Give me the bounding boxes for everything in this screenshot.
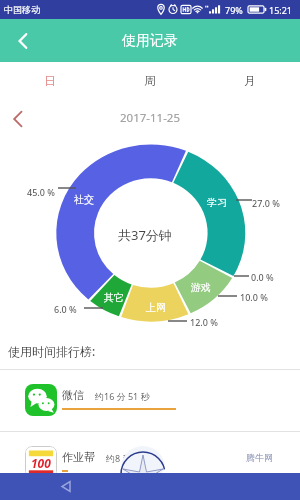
staticText: 15:21 bbox=[269, 4, 293, 16]
staticText: 约8 秒 bbox=[106, 452, 132, 464]
staticText: 使用时间排行榜: bbox=[8, 343, 96, 359]
staticText: 学习 bbox=[207, 196, 227, 209]
staticText: 2017-11-25 bbox=[120, 110, 181, 126]
staticText: 10.0 % bbox=[240, 291, 268, 303]
staticText: 共37分钟 bbox=[118, 226, 172, 244]
button[interactable]: 微信 bbox=[0, 369, 300, 431]
staticText: 其它 bbox=[104, 291, 124, 304]
staticText: 微信 bbox=[62, 388, 84, 402]
button[interactable]: 周 bbox=[100, 62, 200, 100]
staticText: QQTN bbox=[160, 459, 238, 494]
staticText: .com bbox=[243, 469, 282, 491]
staticText: 12.0 % bbox=[190, 316, 218, 328]
staticText: 上网 bbox=[146, 301, 166, 314]
button[interactable]: Back bbox=[50, 473, 80, 500]
staticText: 0.0 % bbox=[251, 271, 274, 283]
staticText: 79% bbox=[225, 4, 243, 16]
staticText: 社交 bbox=[74, 193, 94, 206]
staticText: 45.0 % bbox=[27, 186, 55, 198]
button[interactable]: Back bbox=[0, 19, 46, 62]
staticText: 中国移动 bbox=[4, 4, 40, 15]
staticText: 月 bbox=[244, 74, 256, 88]
staticText: 约16 分 51 秒 bbox=[95, 390, 150, 402]
staticText: 游戏 bbox=[191, 281, 211, 294]
staticText: 周 bbox=[144, 74, 156, 88]
staticText: 腾牛网 bbox=[246, 452, 273, 463]
button[interactable]: Previous day bbox=[5, 106, 31, 132]
staticText: 日 bbox=[44, 74, 56, 88]
staticText: 27.0 % bbox=[252, 197, 280, 209]
staticText: 使用记录 bbox=[122, 32, 178, 50]
staticText: 6.0 % bbox=[54, 303, 77, 315]
button[interactable]: 月 bbox=[200, 62, 300, 100]
button[interactable]: 日 bbox=[0, 62, 100, 100]
button[interactable]: 100 bbox=[0, 431, 300, 493]
staticText: 100 bbox=[31, 455, 51, 471]
staticText: 作业帮 bbox=[62, 450, 95, 464]
